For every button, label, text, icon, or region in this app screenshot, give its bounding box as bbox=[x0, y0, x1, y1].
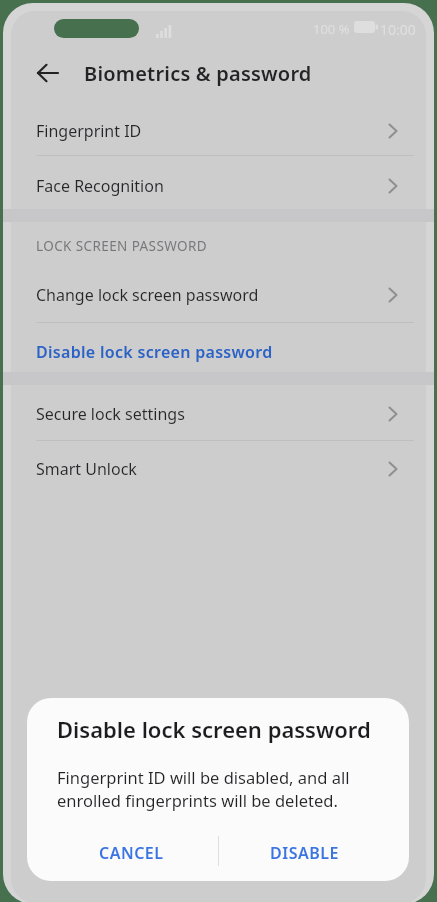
staticText: Smart Unlock bbox=[36, 458, 137, 480]
button[interactable]: Smart Unlock bbox=[3, 442, 434, 496]
staticText: LOCK SCREEN PASSWORD bbox=[36, 237, 208, 255]
button[interactable]: Change lock screen password bbox=[3, 268, 434, 322]
staticText: Fingerprint ID will be disabled, and all… bbox=[57, 766, 350, 812]
staticText: Face Recognition bbox=[36, 175, 164, 197]
button[interactable]: Face Recognition bbox=[3, 159, 434, 213]
staticText: Secure lock settings bbox=[36, 403, 185, 425]
button[interactable]: DISABLE bbox=[209, 824, 400, 881]
button[interactable]: Disable lock screen password bbox=[3, 325, 434, 378]
staticText: 10:00 bbox=[380, 20, 416, 39]
staticText: CANCEL bbox=[99, 842, 164, 864]
button[interactable]: Fingerprint ID bbox=[3, 104, 434, 158]
staticText: Disable lock screen password bbox=[36, 341, 273, 363]
staticText: 100 % bbox=[313, 20, 350, 38]
button[interactable]: CANCEL bbox=[36, 824, 227, 881]
staticText: Disable lock screen password bbox=[57, 714, 371, 744]
button[interactable] bbox=[30, 56, 66, 90]
staticText: Fingerprint ID bbox=[36, 120, 142, 142]
button[interactable]: Secure lock settings bbox=[3, 387, 434, 441]
staticText: Change lock screen password bbox=[36, 284, 259, 306]
staticText: DISABLE bbox=[270, 842, 339, 864]
staticText: Biometrics & password bbox=[84, 60, 312, 87]
